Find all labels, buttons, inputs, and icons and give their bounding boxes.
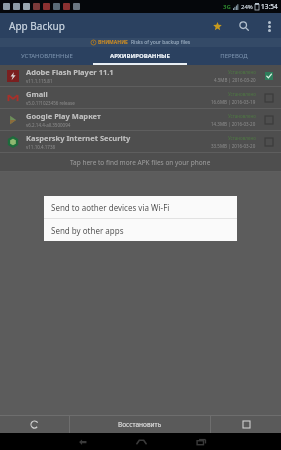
button[interactable]: Refresh xyxy=(0,416,69,433)
staticText: Tap here to find more APK files on your … xyxy=(70,158,211,167)
button[interactable]: Tap here to find more APK files on your … xyxy=(0,153,281,171)
button[interactable]: Восстановить xyxy=(70,416,210,433)
button[interactable]: Search xyxy=(235,17,253,35)
button[interactable]: ПЕРЕВОД xyxy=(187,47,281,65)
staticText: v5.0.1?1023456 release xyxy=(26,100,75,106)
staticText: 13:54 xyxy=(261,2,278,11)
staticText: ПЕРЕВОД xyxy=(220,52,248,60)
staticText: Kaspersky Internet Security xyxy=(26,133,131,143)
staticText: Установлено xyxy=(228,91,256,97)
staticText: v11.1.115.81 xyxy=(26,78,53,84)
staticText: Google Play Маркет xyxy=(26,111,101,121)
button[interactable]: Not selected xyxy=(263,92,275,104)
button[interactable]: Favorites xyxy=(208,17,226,35)
staticText: 14.3MB | 2016-03-20 xyxy=(211,121,256,127)
button[interactable]: Selected xyxy=(263,70,275,82)
staticText: АРХИВИРОВАННЫЕ xyxy=(110,52,170,60)
staticText: Восстановить xyxy=(118,420,162,429)
button[interactable]: Send to aother devices via Wi-Fi xyxy=(44,196,237,218)
staticText: 24% xyxy=(241,3,253,11)
button[interactable]: Adobe Flash Player 11.1 xyxy=(0,65,281,86)
staticText: v6.2.14.4-all.3500094 xyxy=(26,122,71,128)
button[interactable]: Kaspersky Internet Security xyxy=(0,131,281,152)
staticText: Установлено xyxy=(228,69,256,75)
button[interactable]: Send by other apps xyxy=(44,219,237,241)
staticText: 33.5MB | 2016-03-20 xyxy=(211,143,256,149)
staticText: Gmail xyxy=(26,89,48,99)
staticText: УСТАНОВЛЕННЫЕ xyxy=(21,52,73,60)
button[interactable]: Back xyxy=(64,433,98,450)
button[interactable]: Gmail xyxy=(0,87,281,108)
button[interactable]: Not selected xyxy=(263,136,275,148)
button[interactable]: Home xyxy=(124,433,158,450)
staticText: 16.6MB | 2016-03-19 xyxy=(211,99,256,105)
button[interactable]: УСТАНОВЛЕННЫЕ xyxy=(0,47,93,65)
staticText: Установлено xyxy=(228,135,256,141)
staticText: v11.10.4.1738 xyxy=(26,144,56,150)
button[interactable]: АРХИВИРОВАННЫЕ xyxy=(93,47,187,65)
button[interactable]: Google Play Маркет xyxy=(0,109,281,130)
button[interactable]: Select all xyxy=(211,416,281,433)
button[interactable]: More options xyxy=(262,19,276,33)
button[interactable]: Recents xyxy=(184,433,218,450)
staticText: App Backup xyxy=(9,19,65,33)
staticText: Adobe Flash Player 11.1 xyxy=(26,67,114,77)
staticText: 4.5MB | 2016-03-20 xyxy=(214,77,256,83)
button[interactable]: Not selected xyxy=(263,114,275,126)
staticText: 3G xyxy=(223,3,231,11)
staticText: Send by other apps xyxy=(51,225,124,236)
staticText: ВНИМАНИЕ xyxy=(98,39,128,46)
staticText: Установлено xyxy=(228,113,256,119)
staticText: Risks of your backup files xyxy=(131,39,191,46)
staticText: Send to aother devices via Wi-Fi xyxy=(51,202,170,213)
